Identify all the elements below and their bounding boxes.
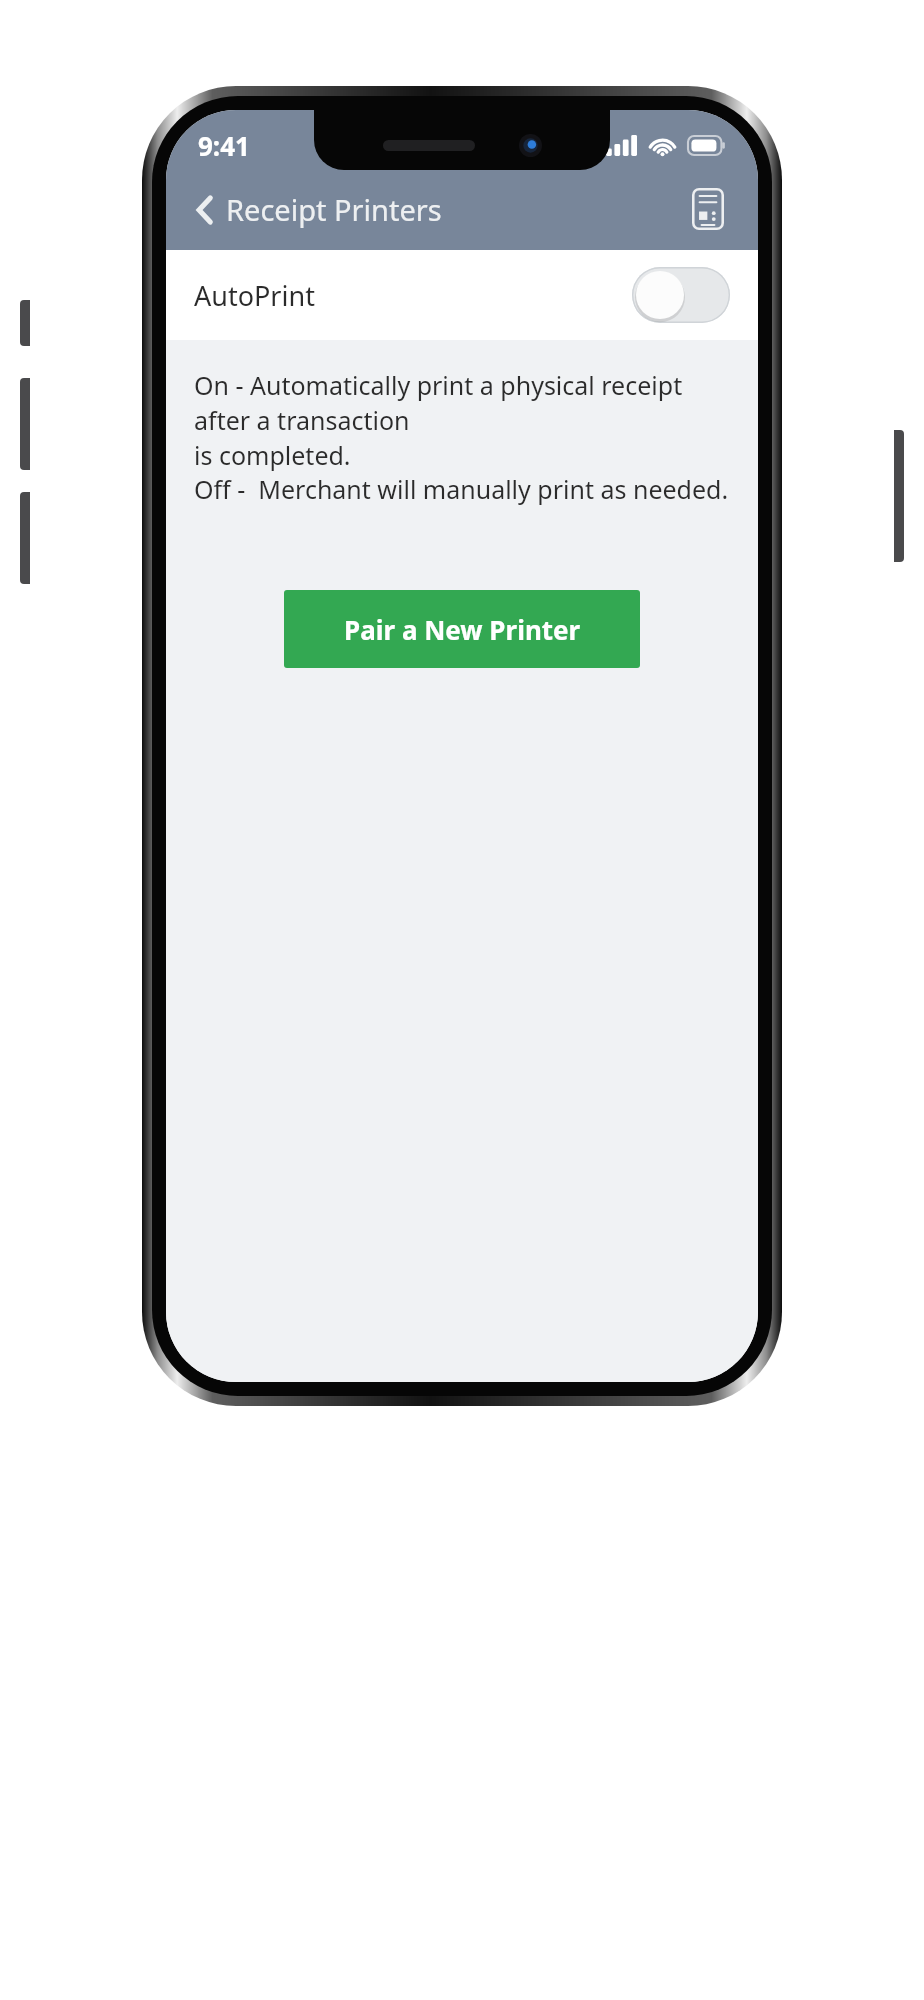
staticText: 9:41	[198, 128, 250, 163]
button[interactable]: Pair a New Printer	[284, 590, 640, 668]
button[interactable]: AutoPrint toggle, off	[632, 267, 730, 323]
button[interactable]: AutoPrint	[166, 250, 758, 340]
staticText: is completed.	[194, 438, 351, 472]
staticText: Off - Merchant will manually print as ne…	[194, 472, 729, 506]
staticText: AutoPrint	[194, 277, 315, 314]
button[interactable]: Receipt Printers	[192, 180, 446, 239]
staticText: Pair a New Printer	[344, 612, 581, 647]
staticText: On - Automatically print a physical rece…	[194, 368, 730, 438]
button[interactable]: Printer settings	[684, 180, 732, 238]
staticText: Receipt Printers	[226, 190, 442, 229]
